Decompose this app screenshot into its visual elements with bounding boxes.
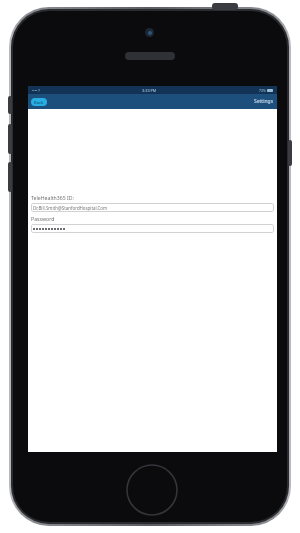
staticText: Password bbox=[31, 215, 55, 222]
staticText: •••• ? bbox=[32, 88, 40, 93]
staticText: Settings bbox=[254, 98, 274, 105]
staticText: 3:33 PM bbox=[142, 88, 157, 93]
button[interactable]: Dr.Bill.Smith@StanfordHospital.Com bbox=[31, 203, 274, 212]
button[interactable] bbox=[31, 224, 274, 233]
staticText: Back bbox=[34, 100, 44, 105]
staticText: 73% bbox=[259, 88, 266, 93]
button[interactable]: Settings bbox=[254, 98, 274, 105]
button[interactable]: Back bbox=[31, 98, 47, 106]
staticText: Dr.Bill.Smith@StanfordHospital.Com bbox=[33, 205, 108, 211]
staticText: TeleHealth365 ID: bbox=[31, 194, 74, 201]
